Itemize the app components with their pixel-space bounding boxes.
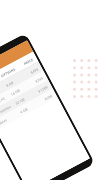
button[interactable]: Workstation (0, 80, 53, 121)
button[interactable]: Laptop (0, 62, 44, 104)
staticText: OPTIONS (0, 64, 19, 77)
button[interactable]: COMPUTER (0, 51, 38, 94)
button[interactable]: Phone mockup showing pricing table (0, 40, 90, 180)
staticText: $1299 (32, 84, 48, 95)
button[interactable]: Tablet (0, 89, 58, 130)
staticText: $499 (23, 67, 39, 78)
staticText: $749 (27, 75, 43, 86)
staticText: PRICE (17, 57, 33, 68)
staticText: 32 GB (14, 92, 34, 105)
staticText: Laptop (0, 84, 7, 99)
staticText: 4 GB (19, 101, 39, 114)
staticText: Workstation (0, 101, 16, 117)
button[interactable]: Desktop PC (0, 71, 48, 113)
staticText: COMPUTER (0, 74, 2, 90)
button[interactable]: PRICING (0, 40, 33, 84)
staticText: $299 (37, 93, 53, 104)
staticText: Desktop PC (0, 92, 12, 108)
staticText: Tablet (0, 110, 21, 126)
staticText: 8 GB (5, 74, 24, 87)
staticText: 16 GB (10, 83, 29, 96)
